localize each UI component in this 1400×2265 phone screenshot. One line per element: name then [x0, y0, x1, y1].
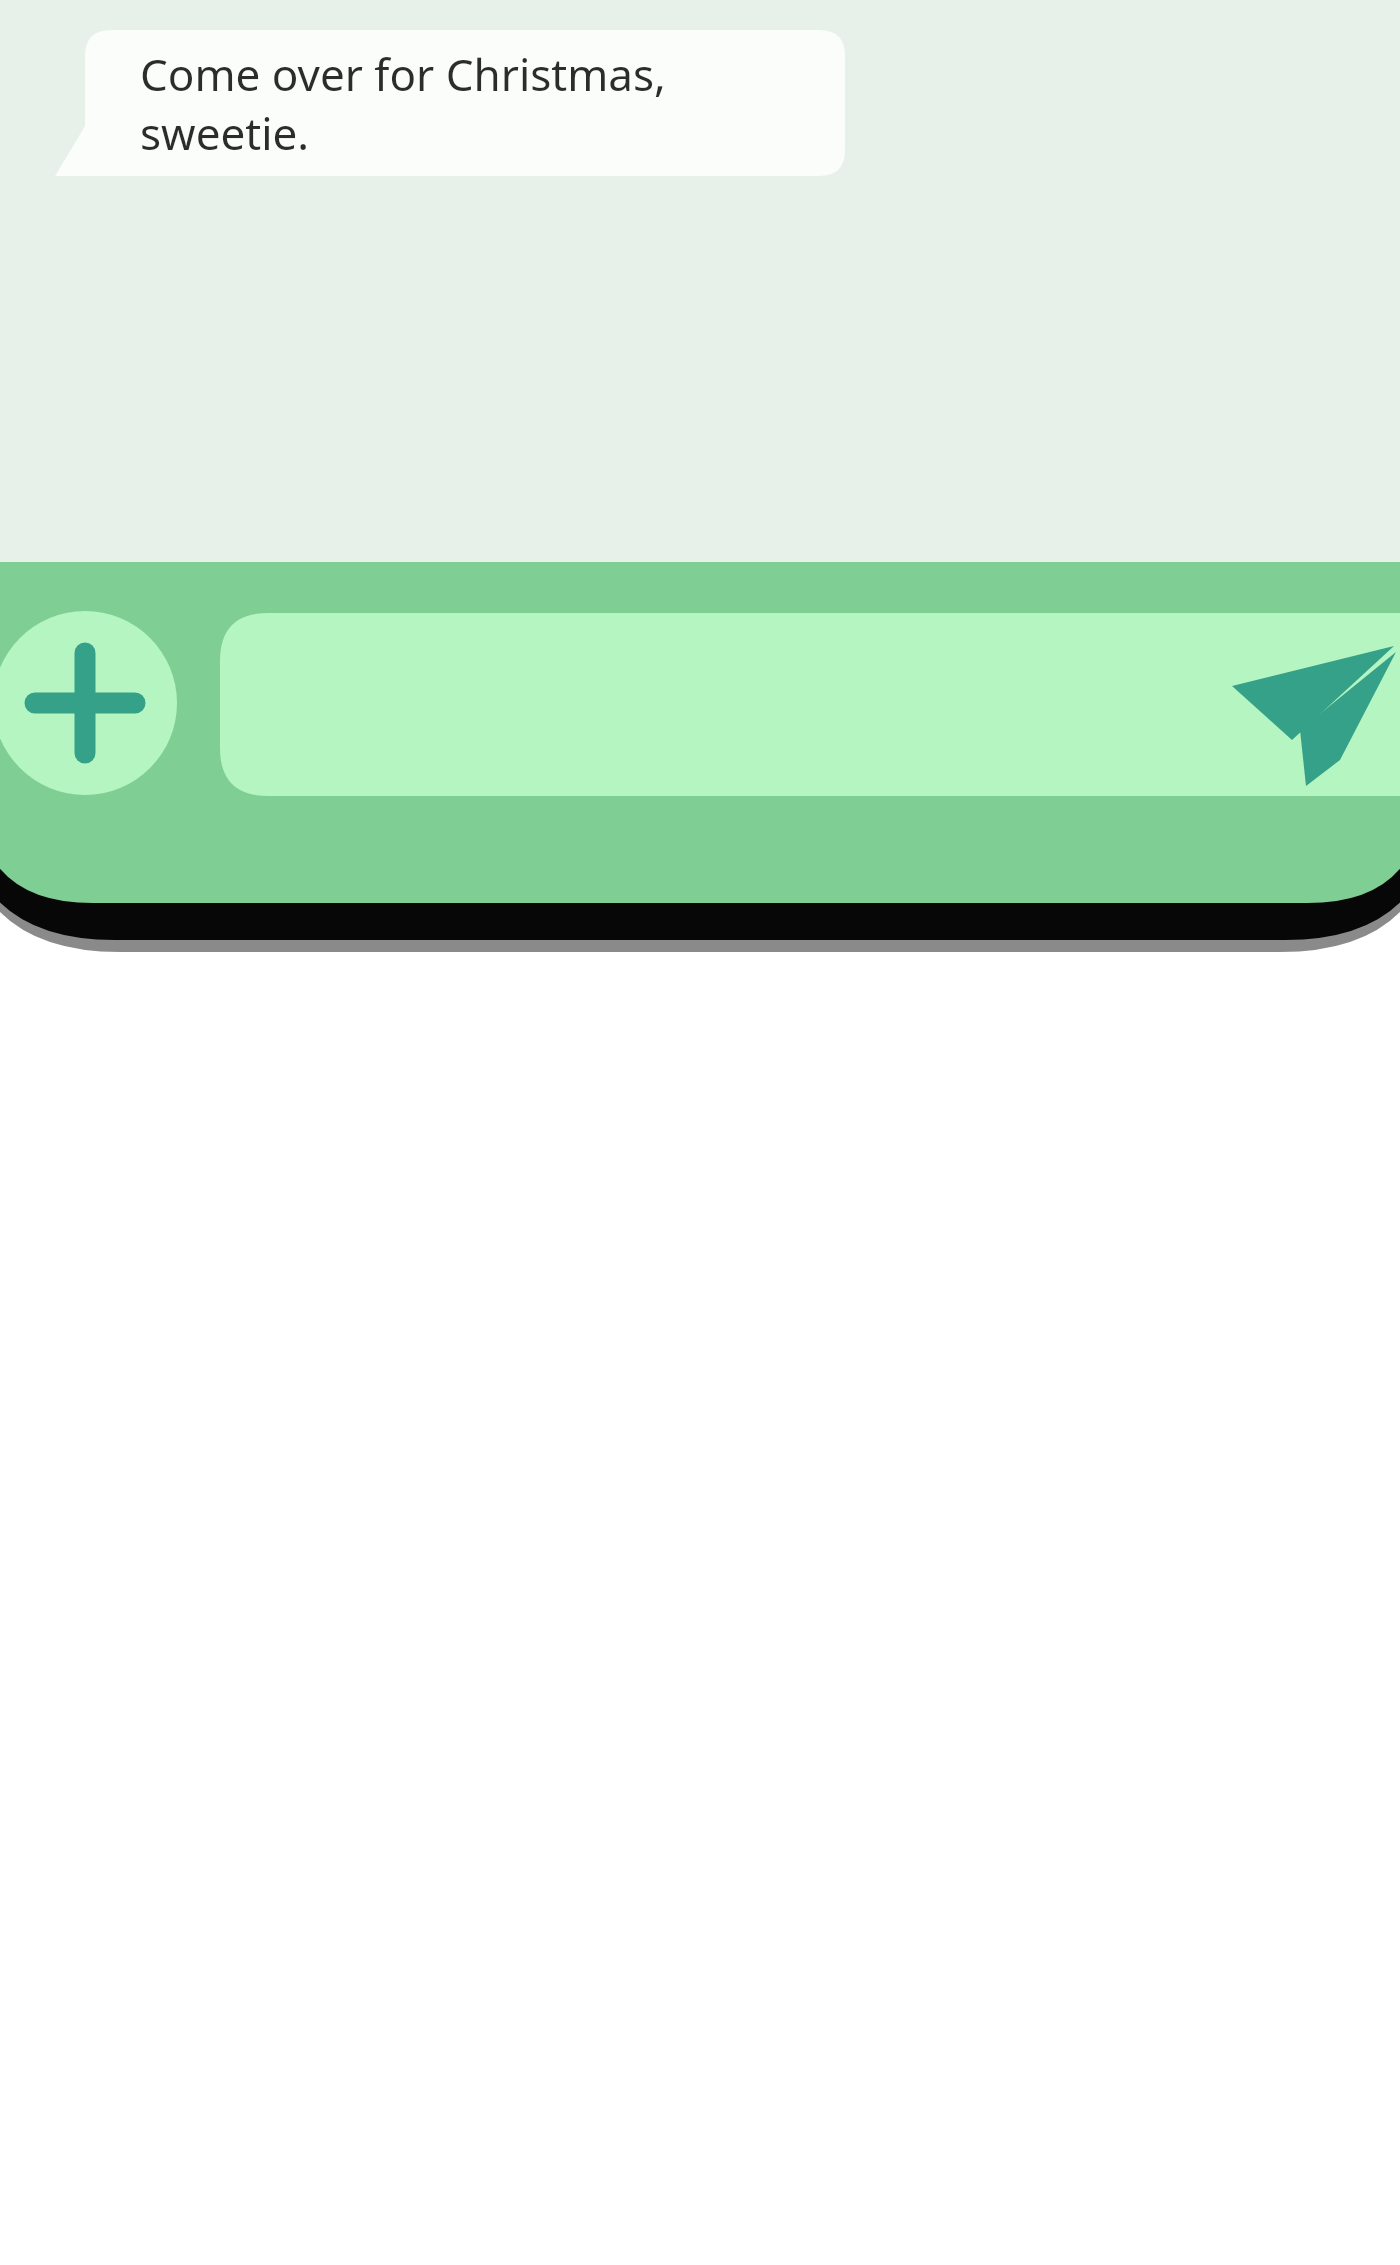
button[interactable]: Message: Come over for Christmas, sweeti… [55, 30, 845, 176]
button[interactable]: Add attachment [0, 611, 177, 795]
staticText: Come over for Christmas, sweetie. [140, 44, 666, 162]
button[interactable]: Send [1232, 626, 1392, 786]
button[interactable]: Message input field [220, 613, 1230, 796]
